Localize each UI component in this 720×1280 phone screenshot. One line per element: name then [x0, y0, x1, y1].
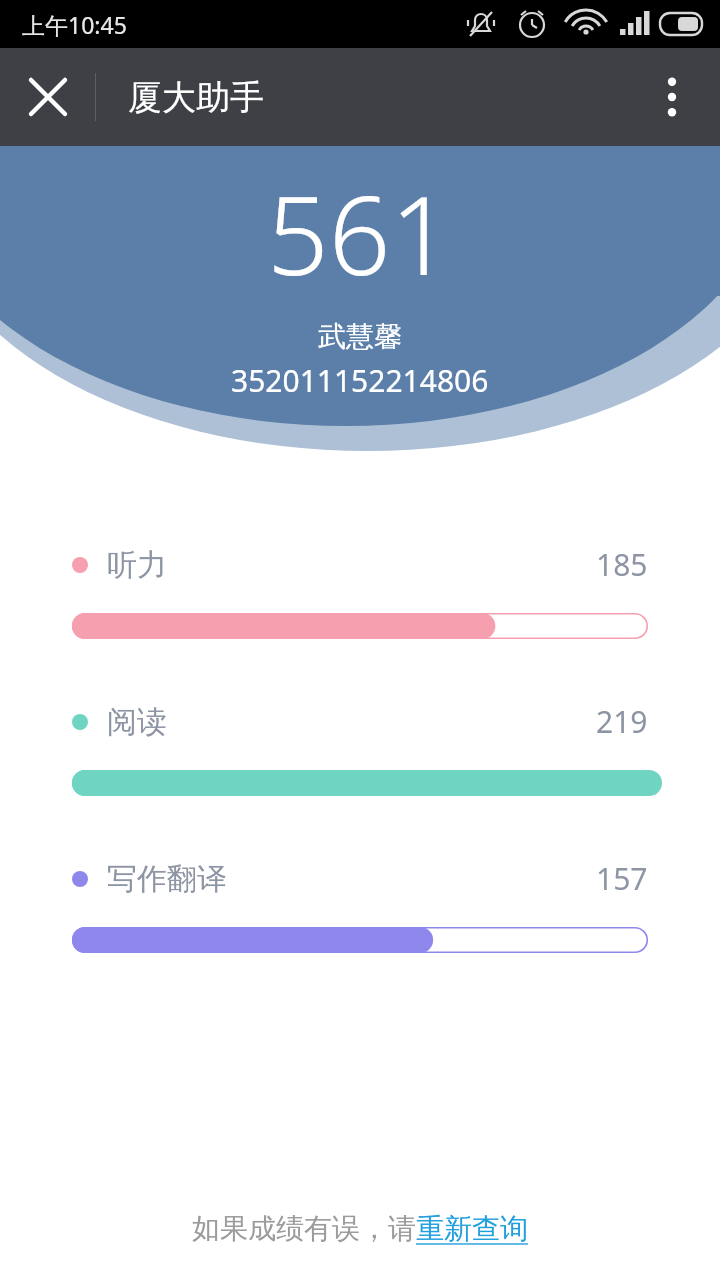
button[interactable]: 阅读	[0, 701, 720, 796]
staticText: 561	[267, 160, 453, 307]
staticText: 写作翻译	[107, 860, 227, 898]
staticText: 听力	[107, 546, 167, 584]
staticText: 上午10:45	[22, 9, 127, 40]
staticText: 厦大助手	[128, 76, 264, 119]
button[interactable]: 写作翻译	[0, 858, 720, 953]
staticText: 185	[596, 544, 648, 585]
staticText: 219	[596, 701, 648, 742]
staticText: 157	[596, 858, 648, 899]
button[interactable]: 听力	[0, 544, 720, 639]
staticText: 阅读	[107, 703, 167, 741]
button[interactable]: More options	[624, 49, 720, 145]
button[interactable]: 如果成绩有误，请重新查询	[184, 1203, 536, 1254]
button[interactable]: Close	[0, 49, 96, 145]
staticText: 武慧馨	[318, 319, 402, 354]
staticText: 如果成绩有误，请重新查询	[192, 1211, 528, 1246]
staticText: 352011152214806	[231, 360, 489, 401]
